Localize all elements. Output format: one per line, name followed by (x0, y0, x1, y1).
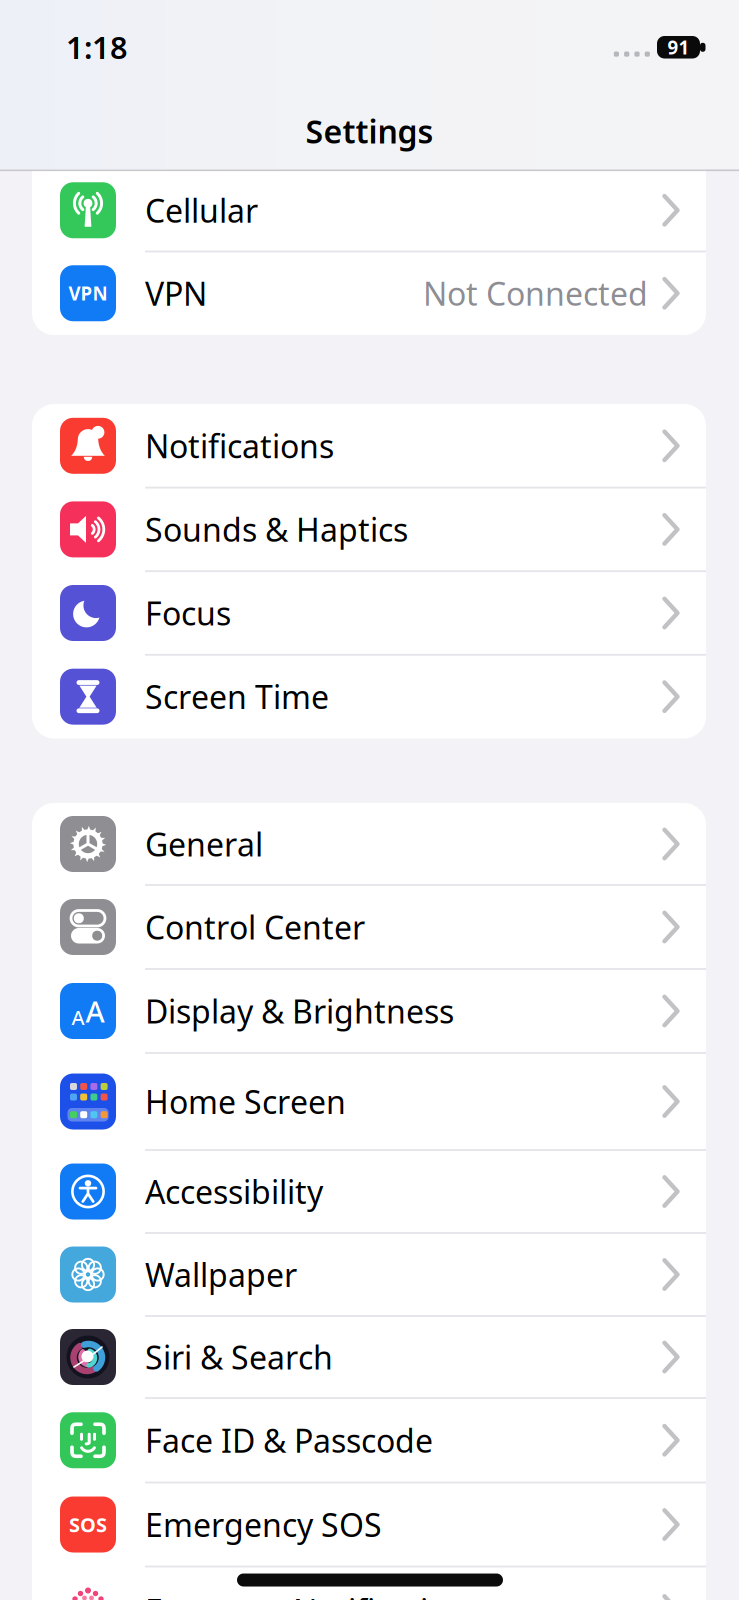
staticText: General (145, 823, 263, 865)
button[interactable]: Sounds & Haptics (32, 488, 706, 571)
staticText: A (71, 1004, 84, 1030)
staticText: 91 (667, 35, 689, 60)
button[interactable]: Notifications (32, 404, 706, 488)
button[interactable]: VPN (32, 251, 706, 335)
button[interactable]: Cellular (32, 169, 706, 251)
staticText: VPN (68, 281, 107, 306)
staticText: Focus (145, 592, 231, 634)
staticText: Screen Time (145, 675, 329, 718)
button[interactable]: Focus (32, 571, 706, 655)
button[interactable]: General (32, 803, 706, 885)
staticText: 1:18 (66, 27, 128, 67)
button[interactable]: Face ID & Passcode (32, 1398, 706, 1482)
staticText: Emergency SOS (145, 1503, 382, 1546)
staticText: A (85, 991, 104, 1030)
button[interactable]: Control Center (32, 885, 706, 969)
button[interactable]: Home Screen (32, 1053, 706, 1150)
staticText: Exposure Notifications (145, 1589, 482, 1600)
button[interactable]: A (32, 969, 706, 1053)
button[interactable]: Screen Time (32, 655, 706, 738)
staticText: Home Screen (145, 1080, 346, 1123)
button[interactable]: Exposure Notifications (32, 1566, 706, 1600)
button[interactable]: SOS (32, 1482, 706, 1566)
button[interactable]: Wallpaper (32, 1233, 706, 1316)
staticText: Sounds & Haptics (145, 508, 408, 551)
button[interactable]: Accessibility (32, 1150, 706, 1233)
staticText: SOS (69, 1511, 107, 1538)
staticText: Face ID & Passcode (145, 1419, 433, 1461)
staticText: Siri & Search (145, 1336, 333, 1378)
button[interactable]: Siri & Search (32, 1316, 706, 1398)
staticText: Notifications (145, 425, 334, 467)
staticText: Display & Brightness (145, 990, 454, 1032)
staticText: Settings (305, 110, 433, 152)
staticText: Cellular (145, 189, 258, 231)
staticText: Not Connected (423, 272, 648, 314)
staticText: Control Center (145, 906, 365, 948)
staticText: Accessibility (145, 1170, 323, 1213)
staticText: VPN (145, 272, 207, 314)
staticText: Wallpaper (145, 1253, 297, 1296)
